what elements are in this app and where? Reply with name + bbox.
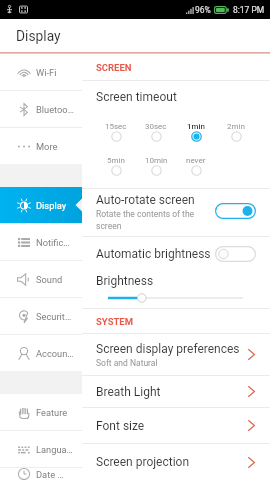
button[interactable]: Bluetoo… <box>0 91 82 127</box>
staticText: 30sec <box>145 122 167 131</box>
button[interactable]: Wi-Fi <box>0 54 82 90</box>
button[interactable]: More <box>0 128 82 164</box>
button[interactable]: 1min <box>176 122 216 142</box>
staticText: Soft and Natural <box>96 358 158 368</box>
staticText: Langua… <box>36 444 73 455</box>
staticText: Screen timeout <box>96 90 177 104</box>
button[interactable]: Langua… <box>0 431 82 467</box>
button[interactable]: Auto-rotate screen <box>82 189 270 236</box>
button[interactable]: Feature <box>0 394 82 430</box>
button[interactable]: Screen display preferences <box>82 334 270 375</box>
staticText: 2min <box>227 122 245 131</box>
staticText: 10min <box>145 156 168 165</box>
staticText: Screen display preferences <box>96 342 240 356</box>
button[interactable]: Date … <box>0 468 82 480</box>
staticText: Automatic brightness <box>96 247 211 261</box>
button[interactable]: Notific… <box>0 224 82 260</box>
staticText: SCREEN <box>96 62 132 73</box>
button[interactable]: 30sec <box>136 122 176 142</box>
staticText: Auto-rotate screen <box>96 193 195 207</box>
button[interactable]: Font size <box>82 408 270 443</box>
staticText: 1min <box>187 122 206 131</box>
staticText: Display <box>16 28 61 44</box>
staticText: Rotate the contents of the screen <box>96 209 208 231</box>
staticText: 96% <box>195 5 211 15</box>
button[interactable]: Sound <box>0 261 82 297</box>
button[interactable]: Display <box>0 187 82 223</box>
staticText: Display <box>36 200 67 211</box>
staticText: Wi-Fi <box>36 67 57 78</box>
staticText: 5min <box>107 156 125 165</box>
button[interactable]: Securit… <box>0 298 82 334</box>
button[interactable]: never <box>176 156 216 176</box>
button[interactable]: 2min <box>216 122 256 142</box>
button[interactable]: Breath Light <box>82 376 270 407</box>
staticText: More <box>36 141 58 152</box>
staticText: Date … <box>36 469 64 480</box>
staticText: SYSTEM <box>96 316 134 327</box>
staticText: Font size <box>96 419 145 433</box>
staticText: 8:17 PM <box>233 5 265 15</box>
staticText: Securit… <box>36 311 72 322</box>
staticText: Bluetoo… <box>36 104 74 115</box>
button[interactable]: 10min <box>136 156 176 176</box>
button[interactable]: Accoun… <box>0 335 82 371</box>
staticText: Sound <box>36 274 63 285</box>
button[interactable]: Screen projection <box>82 444 270 480</box>
staticText: Feature <box>36 407 68 418</box>
button[interactable]: 15sec <box>96 122 136 142</box>
staticText: Brightness <box>96 274 154 288</box>
button[interactable]: 5min <box>96 156 136 176</box>
staticText: Screen projection <box>96 455 190 469</box>
staticText: Notific… <box>36 237 70 248</box>
staticText: Breath Light <box>96 385 161 399</box>
button[interactable]: Automatic brightness <box>82 237 270 270</box>
staticText: never <box>186 156 206 165</box>
staticText: 15sec <box>105 122 127 131</box>
staticText: Accoun… <box>36 348 74 359</box>
